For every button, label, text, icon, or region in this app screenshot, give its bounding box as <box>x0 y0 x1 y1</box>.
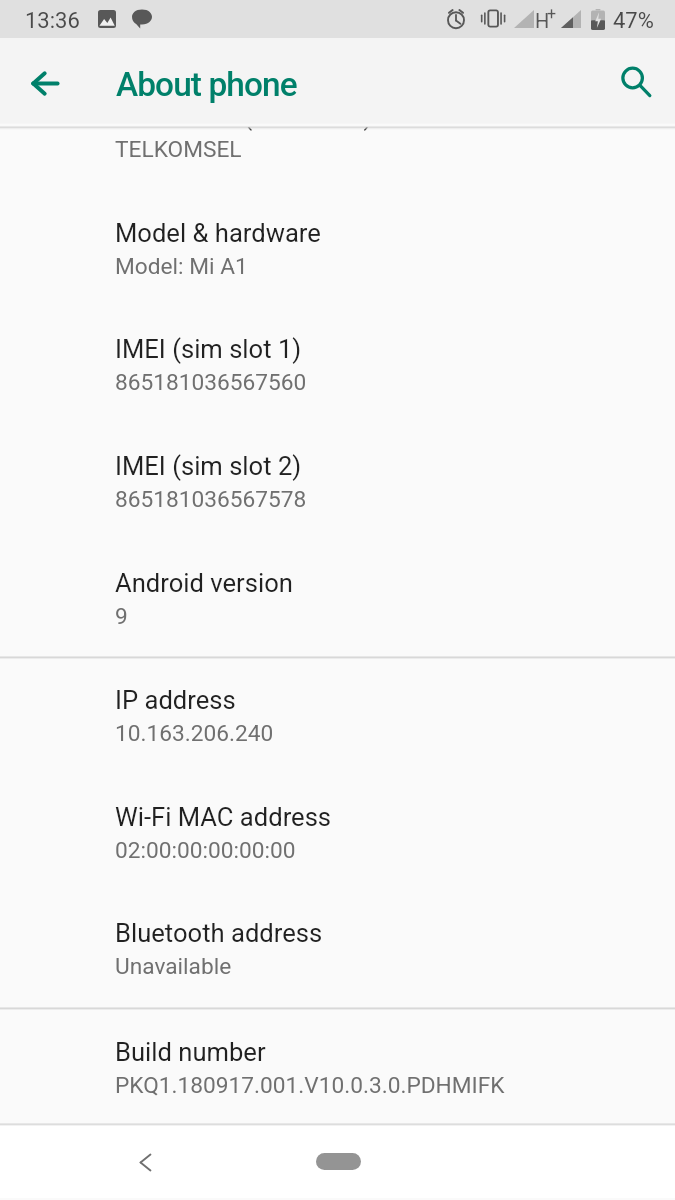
staticText: Wi-Fi MAC address <box>115 802 332 832</box>
button[interactable]: Home <box>316 1153 361 1170</box>
button[interactable]: Android version <box>0 556 675 673</box>
button[interactable]: IMEI (sim slot 1) <box>0 322 675 439</box>
staticText: + <box>547 4 557 23</box>
button[interactable]: Search <box>602 48 670 116</box>
staticText: Bluetooth address <box>115 918 323 948</box>
staticText: Unavailable <box>115 953 232 980</box>
button[interactable]: Bluetooth address <box>0 906 675 1023</box>
button[interactable]: IMEI (sim slot 2) <box>0 439 675 556</box>
staticText: 9 <box>115 603 128 630</box>
staticText: About phone <box>116 65 297 104</box>
staticText: Model & hardware <box>115 218 321 248</box>
button[interactable]: Back <box>120 1137 170 1187</box>
button[interactable]: Back <box>11 49 79 117</box>
staticText: IP address <box>115 685 236 715</box>
staticText: Android version <box>115 568 293 598</box>
staticText: 865181036567578 <box>115 486 307 513</box>
button[interactable]: Wi-Fi MAC address <box>0 790 675 907</box>
staticText: 13:36 <box>25 8 80 34</box>
staticText: 47% <box>613 8 654 34</box>
staticText: 02:00:00:00:00:00 <box>115 837 296 864</box>
staticText: Build number <box>115 1037 266 1067</box>
staticText: PKQ1.180917.001.V10.0.3.0.PDHMIFK <box>115 1072 505 1099</box>
staticText: 10.163.206.240 <box>115 720 274 747</box>
staticText: IMEI (sim slot 1) <box>115 334 302 364</box>
staticText: SIM status (sim slot 1) <box>115 101 373 131</box>
staticText: 865181036567560 <box>115 369 307 396</box>
staticText: Model: Mi A1 <box>115 253 248 280</box>
staticText: H <box>535 9 550 32</box>
staticText: TELKOMSEL <box>115 136 242 163</box>
button[interactable]: Model & hardware <box>0 206 675 323</box>
staticText: IMEI (sim slot 2) <box>115 451 302 481</box>
button[interactable]: SIM status (sim slot 1) <box>0 89 675 206</box>
button[interactable]: Build number <box>0 1025 675 1142</box>
button[interactable]: IP address <box>0 673 675 790</box>
